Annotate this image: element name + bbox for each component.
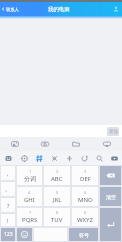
staticText: , xyxy=(7,170,9,177)
staticText: 8 xyxy=(56,210,59,215)
button[interactable]: Undo xyxy=(77,151,92,165)
button[interactable]: Settings xyxy=(16,151,32,165)
button[interactable]: Hide keyboard xyxy=(107,151,122,165)
button[interactable] xyxy=(0,125,122,137)
button[interactable]: 清空 xyxy=(100,187,121,206)
button[interactable]: 。 xyxy=(1,182,15,196)
button[interactable]: Search xyxy=(92,151,107,165)
staticText: 3 xyxy=(84,169,87,174)
staticText: PQRS xyxy=(22,216,38,224)
button[interactable]: 123 xyxy=(1,228,15,241)
staticText: 清空 xyxy=(106,194,116,200)
button[interactable]: 联系人 xyxy=(0,2,22,16)
button[interactable]: Handwriting xyxy=(47,151,62,165)
button[interactable]: Camera xyxy=(30,137,60,151)
staticText: 联系人 xyxy=(6,7,19,12)
staticText: 我的电脑 xyxy=(48,6,70,13)
staticText: DEF xyxy=(80,175,91,183)
staticText: TUV xyxy=(51,216,63,224)
staticText: GHI xyxy=(24,196,35,204)
staticText: ! xyxy=(7,217,9,224)
button[interactable]: 符号 xyxy=(69,228,98,241)
staticText: 分词 xyxy=(24,175,36,183)
button[interactable]: Screen share xyxy=(91,137,122,151)
button[interactable]: 8 xyxy=(44,208,70,226)
button[interactable]: 2 xyxy=(44,166,70,185)
button[interactable]: 1 xyxy=(17,166,42,185)
button[interactable]: Photo xyxy=(0,137,30,151)
button[interactable]: Emoji xyxy=(0,151,16,165)
staticText: 9 xyxy=(84,210,87,215)
staticText: 2 xyxy=(56,169,59,174)
button[interactable]: Layout xyxy=(62,151,77,165)
staticText: 6 xyxy=(84,190,87,195)
staticText: WXYZ xyxy=(77,216,93,224)
staticText: ABC xyxy=(51,175,63,183)
button[interactable]: 9 xyxy=(72,208,98,226)
staticText: 1 xyxy=(29,169,32,174)
staticText: ? xyxy=(7,202,10,209)
button[interactable]: ? xyxy=(1,198,15,212)
staticText: 4 xyxy=(28,190,31,195)
staticText: 。 xyxy=(5,186,11,193)
staticText: JKL xyxy=(53,196,62,204)
button[interactable]: Backspace xyxy=(100,166,121,185)
button[interactable]: 4 xyxy=(17,187,42,206)
staticText: 5 xyxy=(56,190,59,195)
button[interactable]: Contact info xyxy=(109,2,122,16)
button[interactable]: Enter xyxy=(100,208,121,241)
button[interactable]: Pinyin mode xyxy=(32,151,47,165)
staticText: 123 xyxy=(4,231,13,238)
button[interactable]: 7 xyxy=(17,208,42,226)
button[interactable]: File xyxy=(60,137,91,151)
button[interactable]: Emoji xyxy=(17,228,32,241)
button[interactable]: 5 xyxy=(44,187,70,206)
button[interactable]: 发送 xyxy=(107,127,119,136)
staticText: MNO xyxy=(78,196,93,204)
button[interactable]: ! xyxy=(1,214,15,226)
staticText: 发送 xyxy=(109,129,118,135)
staticText: 符号 xyxy=(79,232,89,238)
button[interactable]: 3 xyxy=(72,166,98,185)
staticText: 7 xyxy=(29,210,32,215)
button[interactable]: 6 xyxy=(72,187,98,206)
button[interactable]: , xyxy=(1,166,15,180)
